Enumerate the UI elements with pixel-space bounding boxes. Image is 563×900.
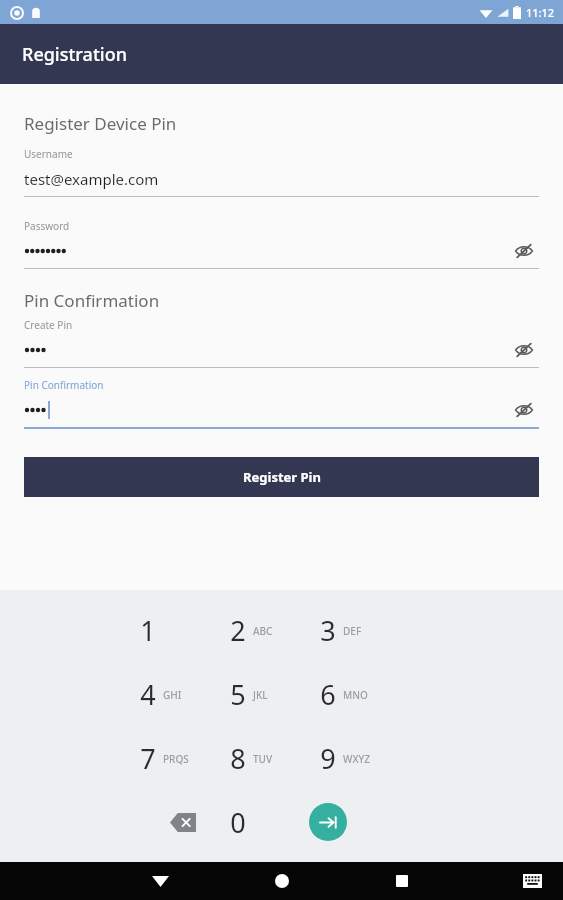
button[interactable]: Toggle password visibility bbox=[509, 239, 539, 263]
button[interactable]: Toggle password visibility bbox=[509, 338, 539, 362]
staticText: 2 bbox=[228, 612, 248, 649]
button[interactable]: Backspace bbox=[138, 798, 228, 846]
staticText: Register Pin bbox=[243, 468, 321, 486]
staticText: Pin Confirmation bbox=[24, 378, 104, 392]
staticText: Registration bbox=[22, 42, 127, 67]
staticText: 4 bbox=[138, 676, 158, 713]
staticText: Create Pin bbox=[24, 318, 73, 332]
staticText: MNO bbox=[343, 688, 368, 702]
button[interactable]: 9 bbox=[318, 736, 408, 780]
staticText: JKL bbox=[253, 688, 268, 702]
staticText: Password bbox=[24, 219, 70, 233]
staticText: 7 bbox=[138, 740, 158, 777]
button[interactable]: Home bbox=[263, 862, 301, 900]
staticText: ABC bbox=[253, 624, 273, 638]
button[interactable]: Toggle password visibility bbox=[509, 398, 539, 422]
button[interactable]: 3 bbox=[318, 608, 408, 652]
staticText: 1 bbox=[138, 612, 158, 649]
staticText: Username bbox=[24, 147, 73, 161]
staticText: 9 bbox=[318, 740, 338, 777]
button[interactable]: 8 bbox=[228, 736, 318, 780]
button[interactable]: 6 bbox=[318, 672, 408, 716]
staticText: 3 bbox=[318, 612, 338, 649]
staticText: GHI bbox=[163, 688, 182, 702]
button[interactable]: 4 bbox=[138, 672, 228, 716]
staticText: PRQS bbox=[163, 752, 189, 766]
button[interactable]: 2 bbox=[228, 608, 318, 652]
staticText: 11:12 bbox=[526, 5, 555, 20]
staticText: Pin Confirmation bbox=[24, 289, 160, 312]
button[interactable]: 5 bbox=[228, 672, 318, 716]
staticText: TUV bbox=[253, 752, 273, 766]
staticText: DEF bbox=[343, 624, 362, 638]
button[interactable]: Switch keyboard bbox=[517, 866, 547, 896]
button[interactable]: Enter bbox=[309, 803, 347, 841]
staticText: Register Device Pin bbox=[24, 112, 177, 135]
staticText: 6 bbox=[318, 676, 338, 713]
button[interactable]: 7 bbox=[138, 736, 228, 780]
button[interactable]: Back bbox=[141, 862, 179, 900]
button[interactable]: 1 bbox=[138, 608, 228, 652]
button[interactable]: Register Pin bbox=[24, 457, 539, 497]
staticText: 8 bbox=[228, 740, 248, 777]
staticText: 0 bbox=[228, 804, 248, 841]
staticText: 5 bbox=[228, 676, 248, 713]
button[interactable]: Recents bbox=[383, 862, 421, 900]
staticText: WXYZ bbox=[343, 752, 371, 766]
button[interactable]: 0 bbox=[228, 798, 318, 846]
staticText: test@example.com bbox=[24, 169, 159, 189]
